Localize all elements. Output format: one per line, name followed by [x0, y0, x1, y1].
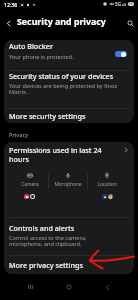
staticText: Location: [97, 181, 117, 188]
button[interactable]: Auto Blocker: [4, 40, 134, 70]
staticText: Security and privacy: [17, 16, 106, 28]
button[interactable]: Controls and alerts: [4, 218, 134, 255]
staticText: 50: [129, 2, 133, 6]
button[interactable]: Permissions used in last 24 hours: [4, 142, 134, 217]
button[interactable]: Navigate up: [0, 14, 17, 32]
button[interactable]: Security status of your devices: [4, 71, 134, 108]
button[interactable]: Auto Blocker on: [115, 51, 127, 57]
staticText: More security settings: [9, 111, 86, 121]
button[interactable]: Home: [58, 280, 80, 294]
button[interactable]: Search: [122, 14, 138, 32]
staticText: More privacy settings: [9, 260, 83, 270]
staticText: 12:36: [4, 1, 18, 8]
staticText: Auto Blocker: [9, 41, 53, 51]
staticText: Your devices are being protected by Knox…: [9, 82, 129, 96]
staticText: Security status of your devices: [9, 71, 114, 81]
button[interactable]: Recent apps: [19, 280, 41, 294]
staticText: 5G: [115, 1, 121, 7]
button[interactable]: More security settings: [4, 109, 134, 123]
staticText: Your phone is protected.: [9, 53, 74, 61]
staticText: Control access to the camera, microphone…: [9, 234, 94, 248]
button[interactable]: Back: [96, 280, 118, 294]
button[interactable]: More privacy settings: [4, 256, 134, 274]
staticText: Camera: [21, 181, 39, 188]
staticText: Permissions used in last 24 hours: [9, 145, 120, 164]
staticText: Microphone: [54, 181, 82, 188]
staticText: Privacy: [9, 131, 29, 139]
staticText: Controls and alerts: [9, 223, 75, 233]
